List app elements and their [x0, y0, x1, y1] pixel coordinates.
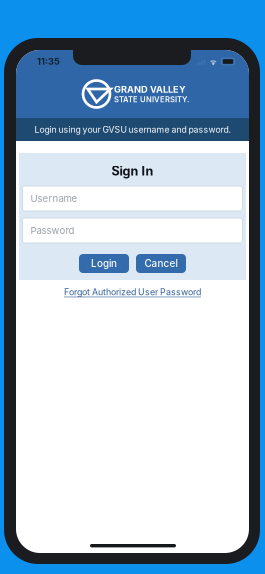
staticText: 11:35	[37, 56, 60, 67]
staticText: Forgot Authorized User Password	[64, 287, 201, 297]
staticText: Username	[30, 193, 77, 204]
staticText: Cancel	[144, 257, 177, 269]
staticText: STATE UNIVERSITY.	[114, 95, 189, 104]
button[interactable]: Forgot Authorized User Password	[16, 286, 249, 298]
button[interactable]: Cancel	[136, 254, 186, 273]
staticText: Login	[91, 257, 117, 269]
staticText: Sign In	[111, 163, 153, 179]
staticText: GRAND VALLEY	[114, 84, 186, 95]
staticText: Password	[30, 225, 74, 236]
staticText: Login using your GVSU username and passw…	[34, 124, 230, 135]
button[interactable]: Login	[79, 254, 129, 273]
